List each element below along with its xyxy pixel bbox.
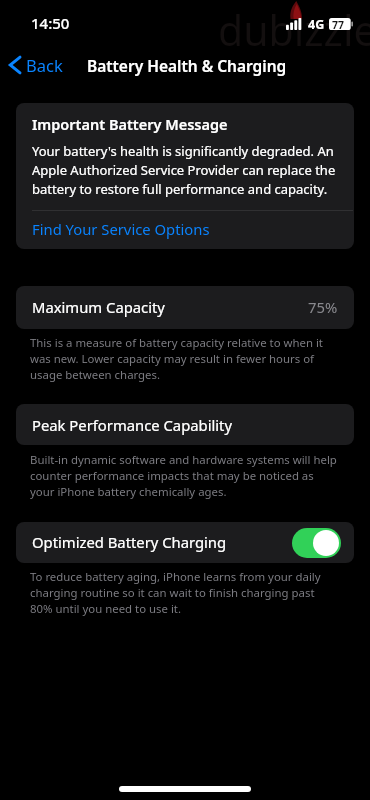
staticText: Back — [26, 54, 63, 76]
button[interactable]: Optimized Battery Charging — [16, 522, 354, 563]
staticText: To reduce battery aging, iPhone learns f… — [30, 569, 339, 617]
staticText: Your battery's health is significantly d… — [32, 142, 342, 198]
staticText: Peak Performance Capability — [32, 415, 232, 435]
button[interactable]: Maximum Capacity — [16, 286, 354, 329]
staticText: 77 — [332, 18, 345, 32]
button[interactable]: Find Your Service Options — [16, 211, 354, 249]
staticText: 4G — [308, 16, 325, 33]
button[interactable]: Optimized Battery Charging toggle — [292, 528, 341, 558]
staticText: Built-in dynamic software and hardware s… — [30, 452, 339, 500]
staticText: Maximum Capacity — [32, 297, 165, 317]
staticText: Important Battery Message — [32, 114, 228, 134]
staticText: 75% — [308, 297, 338, 317]
staticText: dubizzle — [218, 2, 370, 58]
staticText: This is a measure of battery capacity re… — [30, 335, 339, 383]
staticText: Battery Health & Charging — [87, 55, 287, 76]
button[interactable]: Peak Performance Capability — [16, 404, 354, 445]
staticText: Optimized Battery Charging — [32, 532, 227, 552]
staticText: 14:50 — [31, 13, 70, 33]
staticText: Find Your Service Options — [32, 219, 210, 239]
button[interactable]: Back — [4, 50, 71, 80]
